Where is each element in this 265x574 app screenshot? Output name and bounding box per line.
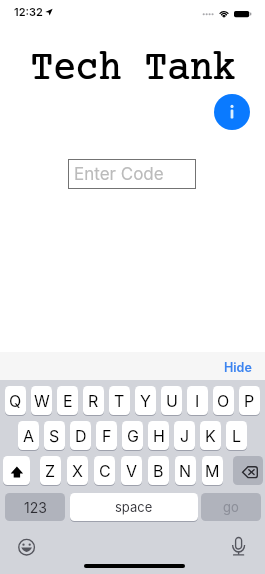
staticText: Tech Tank xyxy=(13,46,252,93)
button[interactable]: Emoji keyboard xyxy=(13,534,40,561)
button[interactable]: S xyxy=(44,421,65,450)
button[interactable]: Shift xyxy=(3,456,30,485)
staticText: O xyxy=(217,391,230,410)
staticText: Enter Code xyxy=(74,164,164,185)
button[interactable]: L xyxy=(226,421,247,450)
staticText: D xyxy=(75,426,87,445)
staticText: E xyxy=(63,391,73,410)
button[interactable]: I xyxy=(187,386,208,415)
button[interactable]: H xyxy=(148,421,169,450)
button[interactable]: Enter Code xyxy=(68,159,196,189)
button[interactable]: J xyxy=(174,421,195,450)
staticText: U xyxy=(166,391,178,410)
staticText: M xyxy=(205,461,220,480)
button[interactable]: Z xyxy=(40,456,61,485)
button[interactable]: W xyxy=(31,386,52,415)
button[interactable]: O xyxy=(213,386,234,415)
staticText: H xyxy=(153,426,165,445)
staticText: I xyxy=(195,391,200,410)
button[interactable]: X xyxy=(67,456,88,485)
staticText: go xyxy=(223,499,239,515)
staticText: F xyxy=(102,426,112,445)
button[interactable]: K xyxy=(200,421,221,450)
button[interactable]: C xyxy=(94,456,115,485)
button[interactable]: Dictation xyxy=(228,532,250,559)
button[interactable]: Q xyxy=(5,386,26,415)
staticText: T xyxy=(114,391,125,410)
button[interactable]: space xyxy=(70,493,198,521)
staticText: K xyxy=(205,426,216,445)
button[interactable]: P xyxy=(239,386,260,415)
staticText: 123 xyxy=(24,499,47,516)
staticText: 12:32 xyxy=(14,5,43,18)
staticText: J xyxy=(180,426,190,445)
staticText: X xyxy=(72,461,83,480)
button[interactable]: Hide xyxy=(213,355,265,378)
button[interactable]: E xyxy=(57,386,78,415)
staticText: B xyxy=(153,461,164,480)
staticText: P xyxy=(244,391,255,410)
staticText: G xyxy=(127,426,139,445)
staticText: L xyxy=(232,426,242,445)
button[interactable]: Backspace xyxy=(233,456,263,485)
button[interactable]: G xyxy=(122,421,143,450)
button[interactable]: B xyxy=(148,456,169,485)
button[interactable]: M xyxy=(202,456,223,485)
staticText: V xyxy=(126,461,138,480)
button[interactable]: D xyxy=(70,421,91,450)
staticText: Tech Tank xyxy=(14,46,253,93)
staticText: A xyxy=(23,426,35,445)
button[interactable]: 123 xyxy=(5,493,65,521)
staticText: N xyxy=(179,461,192,480)
button[interactable]: U xyxy=(161,386,182,415)
button[interactable]: F xyxy=(96,421,117,450)
staticText: space xyxy=(115,499,153,515)
staticText: Q xyxy=(9,391,22,410)
staticText: W xyxy=(34,391,50,410)
staticText: Z xyxy=(45,461,56,480)
staticText: Y xyxy=(140,391,151,410)
button[interactable]: R xyxy=(83,386,104,415)
staticText: C xyxy=(99,461,111,480)
staticText: R xyxy=(88,391,99,410)
button[interactable]: N xyxy=(175,456,196,485)
button[interactable]: V xyxy=(121,456,142,485)
button[interactable]: Y xyxy=(135,386,156,415)
staticText: Hide xyxy=(224,360,252,375)
button[interactable]: Information xyxy=(214,94,250,130)
button[interactable]: go xyxy=(201,493,261,521)
button[interactable]: A xyxy=(18,421,39,450)
staticText: S xyxy=(49,426,60,445)
button[interactable]: T xyxy=(109,386,130,415)
